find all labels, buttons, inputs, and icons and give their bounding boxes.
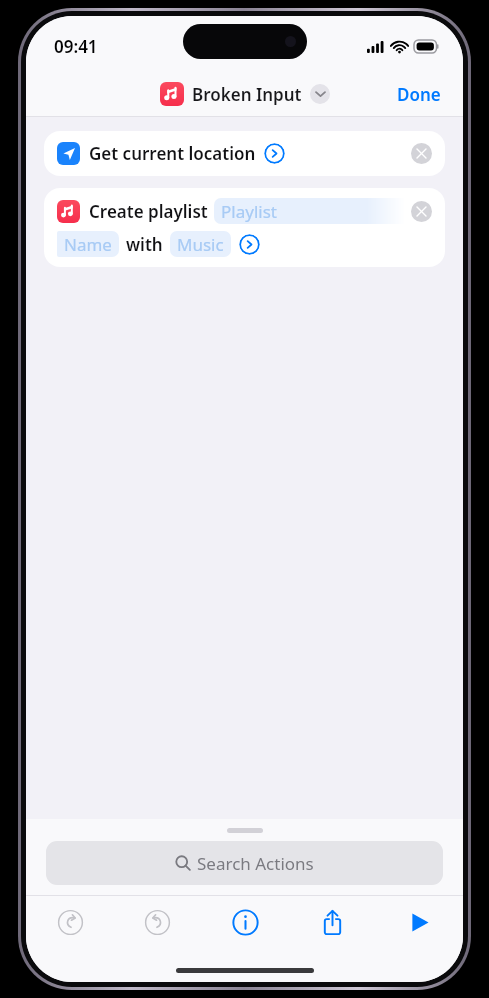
button[interactable]: Undo	[48, 900, 92, 944]
button[interactable]: Shortcut options	[310, 84, 330, 104]
staticText: with	[126, 233, 163, 256]
button[interactable]: Show details	[264, 143, 285, 164]
button[interactable]: Run shortcut	[397, 900, 441, 944]
staticText: Done	[397, 83, 441, 106]
button[interactable]: Redo	[135, 900, 179, 944]
staticText: Get current location	[89, 142, 256, 165]
button[interactable]: Show details	[239, 234, 260, 255]
button[interactable]: Search Actions	[46, 841, 443, 885]
button[interactable]: Remove action	[411, 201, 432, 222]
staticText: Broken Input	[192, 83, 302, 106]
staticText: 09:41	[54, 35, 98, 58]
staticText: Name	[64, 233, 112, 256]
button[interactable]: Done	[375, 75, 463, 114]
staticText: Create playlist	[89, 200, 208, 223]
staticText: Playlist	[221, 200, 277, 223]
button[interactable]: Share	[310, 900, 354, 944]
staticText: Search Actions	[197, 852, 314, 875]
button[interactable]: Shortcut details	[223, 900, 267, 944]
button[interactable]: Remove action	[411, 143, 432, 164]
button[interactable]: Get current location	[44, 131, 445, 176]
staticText: Music	[177, 233, 224, 256]
button[interactable]: Create playlist	[44, 188, 445, 267]
